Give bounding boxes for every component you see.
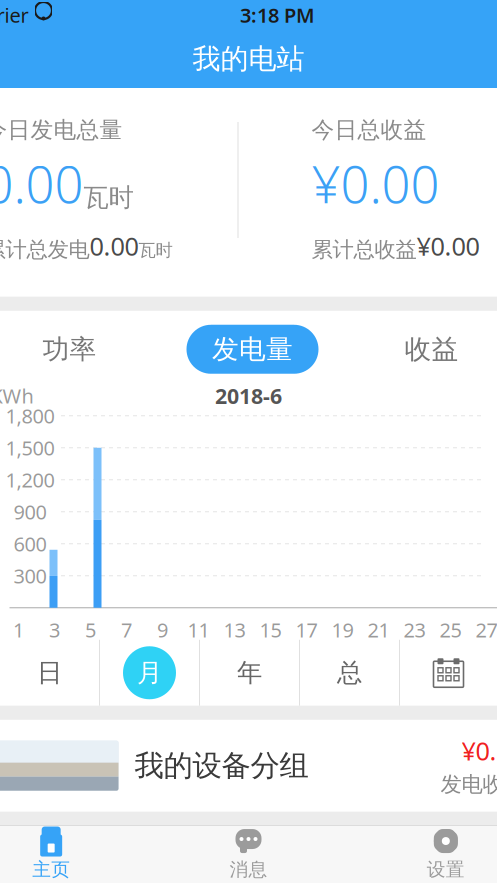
staticText: 17 bbox=[295, 616, 317, 643]
staticText: 日 bbox=[37, 657, 62, 688]
staticText: 瓦时 bbox=[138, 239, 172, 261]
staticText: 月 bbox=[137, 657, 162, 688]
button[interactable]: 日 bbox=[0, 640, 99, 706]
staticText: 设置 bbox=[427, 858, 465, 881]
staticText: ¥0.00 bbox=[461, 734, 497, 767]
staticText: 0.00 bbox=[89, 229, 138, 263]
staticText: 年 bbox=[237, 657, 262, 688]
button[interactable]: 选择日期 bbox=[400, 640, 497, 706]
staticText: KWh bbox=[0, 382, 33, 409]
staticText: 累计总发电 bbox=[0, 237, 89, 263]
button[interactable]: 总 bbox=[300, 640, 399, 706]
staticText: ¥0.00 bbox=[311, 150, 439, 217]
staticText: 瓦时 bbox=[83, 182, 133, 213]
staticText: 13 bbox=[223, 616, 245, 643]
staticText: 1,500 bbox=[5, 434, 54, 461]
staticText: 300 bbox=[13, 562, 46, 589]
staticText: 今日总收益 bbox=[311, 116, 426, 144]
staticText: 发电量 bbox=[212, 333, 293, 366]
staticText: 总 bbox=[337, 657, 362, 688]
button[interactable]: 消息 bbox=[150, 825, 347, 883]
button[interactable]: 我的设备分组 bbox=[0, 720, 497, 812]
staticText: 我的设备分组 bbox=[134, 748, 308, 784]
staticText: 27 bbox=[475, 616, 497, 643]
staticText: 今日发电总量 bbox=[0, 116, 122, 144]
staticText: 600 bbox=[13, 530, 46, 557]
staticText: 15 bbox=[259, 616, 281, 643]
button[interactable]: 功率 bbox=[10, 325, 128, 374]
staticText: 900 bbox=[13, 498, 46, 525]
staticText: 3:18 PM bbox=[240, 2, 315, 28]
staticText: 25 bbox=[439, 616, 461, 643]
staticText: 7 bbox=[121, 616, 132, 643]
button[interactable]: 收益 bbox=[376, 325, 486, 374]
button[interactable]: 月 bbox=[100, 640, 199, 706]
staticText: 9 bbox=[157, 616, 168, 643]
staticText: 2018-6 bbox=[215, 382, 282, 410]
staticText: 21 bbox=[367, 616, 389, 643]
button[interactable]: 主页 bbox=[0, 825, 150, 883]
staticText: ¥0.00 bbox=[416, 229, 479, 263]
staticText: Carrier bbox=[0, 2, 28, 28]
staticText: 功率 bbox=[42, 333, 96, 366]
staticText: 主页 bbox=[32, 858, 70, 881]
staticText: 1,200 bbox=[5, 466, 54, 493]
staticText: 累计总收益 bbox=[311, 237, 416, 263]
staticText: 11 bbox=[187, 616, 209, 643]
staticText: 我的电站 bbox=[192, 42, 304, 76]
staticText: 23 bbox=[403, 616, 425, 643]
staticText: 0.00 bbox=[0, 150, 83, 217]
staticText: 19 bbox=[331, 616, 353, 643]
staticText: 3 bbox=[49, 616, 60, 643]
staticText: 收益 bbox=[404, 333, 458, 366]
staticText: 5 bbox=[85, 616, 96, 643]
button[interactable]: 设置 bbox=[347, 825, 497, 883]
button[interactable]: 年 bbox=[200, 640, 299, 706]
staticText: 发电收益 bbox=[440, 771, 497, 798]
staticText: 1 bbox=[13, 616, 24, 643]
staticText: 消息 bbox=[229, 858, 267, 881]
button[interactable]: 发电量 bbox=[186, 325, 318, 374]
staticText: 1,800 bbox=[5, 402, 54, 429]
